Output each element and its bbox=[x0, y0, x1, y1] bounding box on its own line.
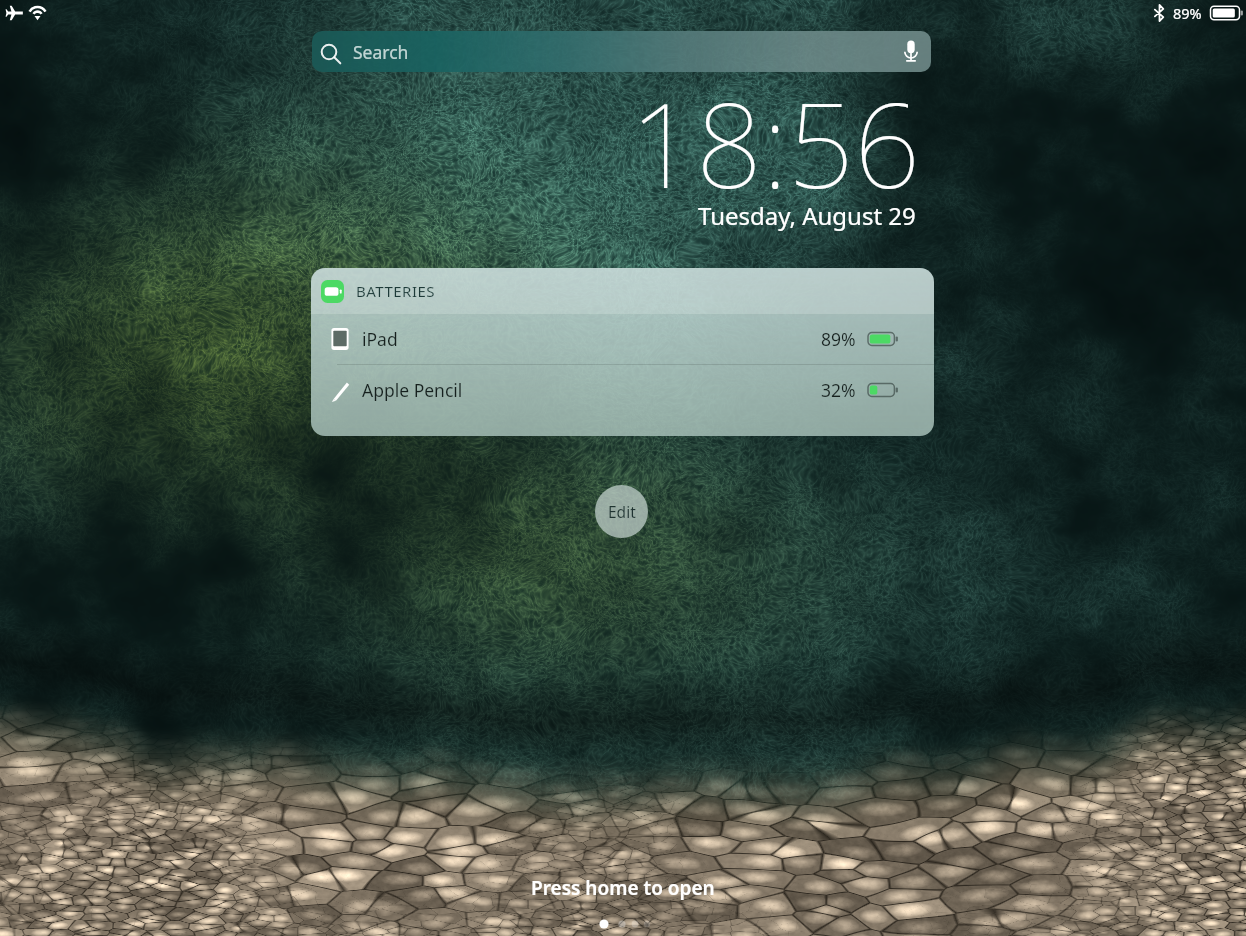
staticText: 32% bbox=[821, 378, 856, 402]
staticText: 18:56 bbox=[630, 64, 920, 222]
button[interactable]: Voice search bbox=[891, 31, 931, 72]
staticText: Apple Pencil bbox=[362, 378, 463, 402]
staticText: iPad bbox=[362, 327, 398, 351]
other: Bluetooth on bbox=[1150, 0, 1170, 26]
button[interactable]: Edit bbox=[595, 485, 648, 538]
staticText: Search bbox=[353, 40, 409, 64]
other: Battery 89 percent bbox=[1203, 0, 1246, 26]
staticText: 89% bbox=[1173, 3, 1202, 23]
button[interactable]: Press home to open bbox=[493, 871, 753, 905]
other: Wi-Fi connected bbox=[26, 0, 50, 26]
staticText: Edit bbox=[608, 501, 636, 522]
button[interactable]: iPad bbox=[311, 314, 934, 364]
other: Airplane mode on bbox=[1, 0, 27, 26]
button[interactable]: Apple Pencil bbox=[311, 365, 934, 415]
button[interactable]: Search bbox=[312, 31, 931, 72]
staticText: 89% bbox=[821, 327, 856, 351]
staticText: Tuesday, August 29 bbox=[698, 199, 916, 232]
staticText: BATTERIES bbox=[356, 281, 436, 301]
button[interactable]: BATTERIES bbox=[311, 268, 934, 314]
staticText: Press home to open bbox=[531, 875, 715, 901]
button[interactable]: Page 1 of 4 bbox=[578, 913, 668, 935]
